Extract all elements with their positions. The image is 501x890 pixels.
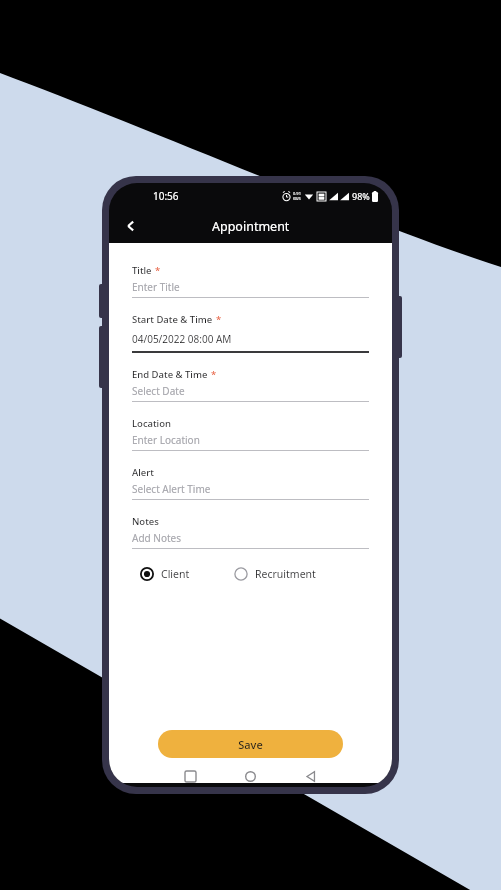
button[interactable]: Back bbox=[117, 212, 145, 240]
staticText: Notes bbox=[132, 515, 159, 528]
staticText: 0.91 bbox=[293, 191, 301, 196]
staticText: 98% bbox=[352, 190, 370, 202]
staticText: Add Notes bbox=[132, 531, 181, 545]
button[interactable]: End Date & Time bbox=[132, 368, 369, 402]
staticText: End Date & Time bbox=[132, 368, 208, 381]
button[interactable]: Notes bbox=[132, 515, 369, 549]
button[interactable]: Recent apps bbox=[161, 770, 220, 783]
staticText: Enter Title bbox=[132, 280, 180, 294]
button[interactable]: Save bbox=[158, 730, 343, 758]
staticText: Location bbox=[132, 417, 171, 430]
staticText: Appointment bbox=[212, 218, 290, 235]
staticText: Alert bbox=[132, 466, 154, 479]
button[interactable]: Title bbox=[132, 264, 369, 298]
staticText: 10:56 bbox=[153, 189, 179, 203]
button[interactable]: Back bbox=[280, 770, 340, 783]
staticText: KB/S bbox=[293, 196, 301, 201]
button[interactable]: Alert bbox=[132, 466, 369, 500]
button[interactable]: Location bbox=[132, 417, 369, 451]
button[interactable]: Home bbox=[220, 770, 280, 783]
staticText: Select Date bbox=[132, 384, 185, 398]
staticText: Enter Location bbox=[132, 433, 200, 447]
staticText: * bbox=[216, 313, 222, 326]
staticText: Title bbox=[132, 264, 152, 277]
staticText: Start Date & Time bbox=[132, 313, 213, 326]
staticText: * bbox=[155, 264, 161, 277]
staticText: Client bbox=[161, 567, 190, 581]
staticText: Save bbox=[238, 737, 263, 752]
staticText: Select Alert Time bbox=[132, 482, 211, 496]
button[interactable]: Recruitment bbox=[234, 567, 316, 581]
staticText: * bbox=[211, 368, 217, 381]
button[interactable]: Start Date & Time bbox=[132, 313, 369, 353]
staticText: 04/05/2022 08:00 AM bbox=[132, 332, 232, 346]
button[interactable]: Client bbox=[140, 567, 190, 581]
staticText: Recruitment bbox=[255, 567, 316, 581]
